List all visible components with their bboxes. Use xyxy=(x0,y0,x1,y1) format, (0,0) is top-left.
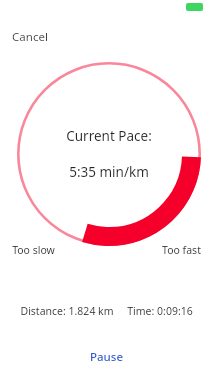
staticText: Too slow xyxy=(12,243,55,257)
staticText: 5:35 min/km xyxy=(69,163,149,181)
other: Battery full xyxy=(186,3,203,11)
staticText: Current Pace: xyxy=(66,127,152,145)
staticText: Distance: 1.824 km xyxy=(20,304,114,318)
staticText: Pause xyxy=(90,349,123,365)
staticText: Time: 0:09:16 xyxy=(127,304,193,318)
staticText: Cancel xyxy=(12,29,48,45)
button[interactable]: Cancel xyxy=(5,26,55,48)
staticText: Too fast xyxy=(162,243,201,257)
button[interactable]: Pause xyxy=(80,345,133,369)
